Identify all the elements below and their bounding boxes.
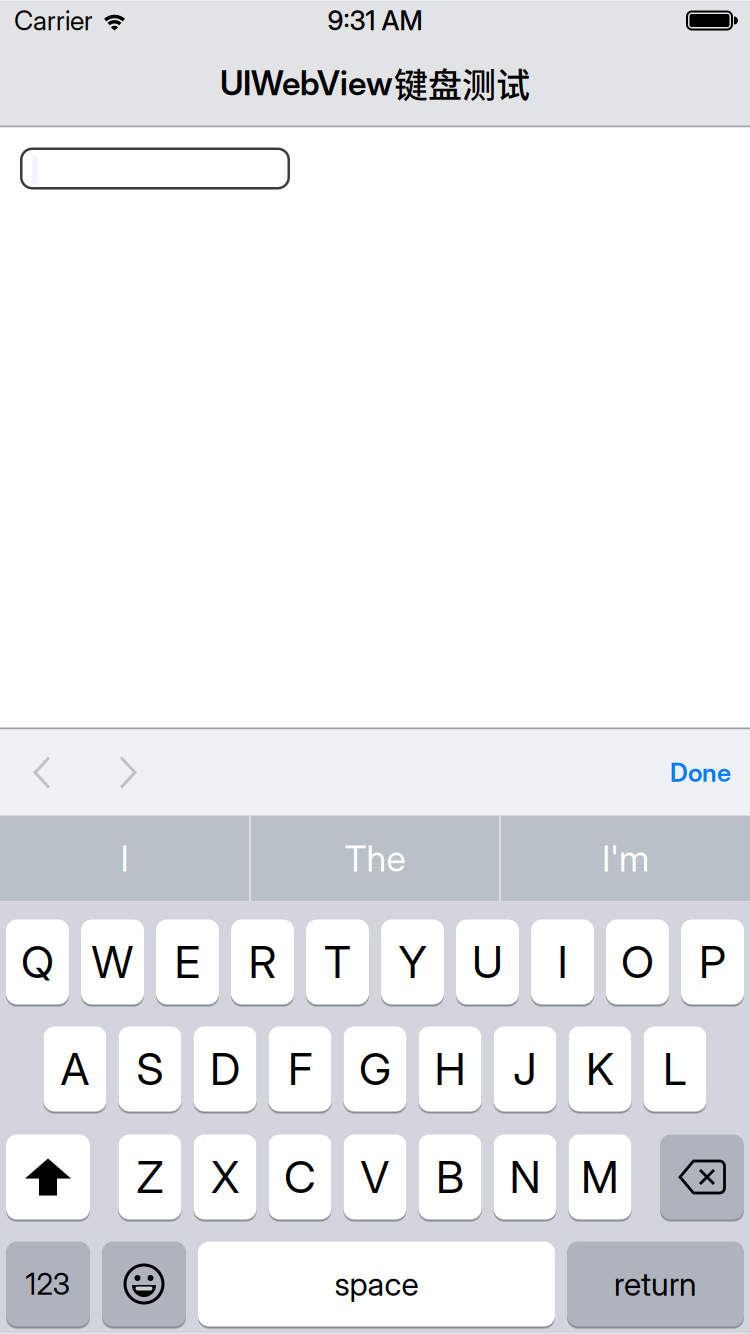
button[interactable]: Next field (100, 729, 156, 815)
staticText: 123 (25, 1267, 70, 1301)
button[interactable]: Return (567, 1241, 744, 1326)
button[interactable]: E (156, 919, 219, 1004)
staticText: X (211, 1151, 239, 1203)
staticText: Carrier (14, 5, 93, 36)
staticText: N (509, 1151, 540, 1203)
button[interactable]: I'm (501, 815, 750, 901)
staticText: M (581, 1151, 619, 1203)
button[interactable]: Q (6, 919, 69, 1004)
button[interactable]: Y (381, 919, 444, 1004)
button[interactable]: S (118, 1026, 181, 1111)
staticText: A (60, 1043, 89, 1095)
staticText: 9:31 AM (327, 5, 422, 36)
button[interactable]: F (268, 1026, 331, 1111)
staticText: J (513, 1043, 537, 1095)
button[interactable]: The (251, 815, 499, 901)
staticText: F (288, 1043, 312, 1095)
button[interactable]: X (193, 1134, 256, 1219)
staticText: Done (670, 758, 731, 787)
staticText: G (359, 1043, 391, 1095)
button[interactable]: V (343, 1134, 406, 1219)
staticText: The (344, 837, 405, 880)
staticText: D (210, 1043, 240, 1095)
button[interactable]: C (268, 1134, 331, 1219)
button[interactable]: P (681, 919, 744, 1004)
staticText: L (663, 1043, 687, 1095)
staticText: P (699, 936, 726, 988)
button[interactable]: H (418, 1026, 481, 1111)
button[interactable]: J (493, 1026, 556, 1111)
staticText: space (334, 1265, 418, 1303)
button[interactable]: Previous field (14, 729, 70, 815)
staticText: Q (21, 936, 54, 988)
button[interactable]: L (643, 1026, 706, 1111)
staticText: H (434, 1043, 465, 1095)
button[interactable]: U (456, 919, 519, 1004)
button[interactable]: W (81, 919, 144, 1004)
button[interactable]: Done (670, 729, 750, 815)
button[interactable]: K (568, 1026, 631, 1111)
staticText: I (120, 837, 128, 880)
staticText: R (248, 936, 276, 988)
staticText: T (324, 936, 351, 988)
button[interactable]: Text field (20, 147, 290, 189)
button[interactable]: Space (198, 1241, 555, 1326)
staticText: B (436, 1151, 464, 1203)
button[interactable]: N (493, 1134, 556, 1219)
staticText: S (136, 1043, 163, 1095)
button[interactable]: Z (118, 1134, 181, 1219)
staticText: E (174, 936, 200, 988)
button[interactable]: Shift (6, 1134, 90, 1219)
button[interactable]: I (531, 919, 594, 1004)
staticText: return (614, 1265, 697, 1303)
button[interactable]: D (193, 1026, 256, 1111)
staticText: O (621, 936, 654, 988)
button[interactable]: Emoji (102, 1241, 186, 1326)
staticText: Y (398, 936, 426, 988)
button[interactable]: T (306, 919, 369, 1004)
button[interactable]: Delete (660, 1134, 744, 1219)
staticText: V (360, 1151, 389, 1203)
staticText: 键盘测试 (394, 58, 530, 108)
button[interactable]: I (0, 815, 249, 901)
button[interactable]: O (606, 919, 669, 1004)
staticText: UIWebView (220, 63, 393, 103)
staticText: U (472, 936, 503, 988)
staticText: K (586, 1043, 614, 1095)
button[interactable]: M (568, 1134, 631, 1219)
button[interactable]: A (43, 1026, 106, 1111)
button[interactable]: Numbers (6, 1241, 90, 1326)
staticText: Z (136, 1151, 163, 1203)
button[interactable]: B (418, 1134, 481, 1219)
button[interactable]: G (343, 1026, 406, 1111)
button[interactable]: R (231, 919, 294, 1004)
staticText: I'm (602, 837, 649, 880)
staticText: W (91, 936, 133, 988)
staticText: I (557, 936, 567, 988)
staticText: C (284, 1151, 316, 1203)
